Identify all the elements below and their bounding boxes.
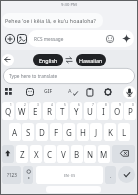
staticText: G <box>66 127 72 138</box>
staticText: U <box>87 106 93 117</box>
staticText: 0 <box>132 103 134 107</box>
staticText: . <box>110 172 112 179</box>
staticText: N <box>87 149 94 160</box>
staticText: E <box>33 106 38 117</box>
staticText: C <box>47 149 53 160</box>
staticText: 9 <box>119 103 121 107</box>
staticText: 8 <box>105 103 107 107</box>
staticText: EN · ES <box>64 173 76 178</box>
staticText: A <box>12 127 18 138</box>
staticText: Y <box>74 106 79 117</box>
staticText: X <box>34 149 39 160</box>
staticText: RCS message <box>34 36 64 42</box>
staticText: S <box>26 127 31 138</box>
staticText: T <box>60 106 65 117</box>
staticText: R <box>47 106 52 117</box>
staticText: J <box>95 127 98 138</box>
staticText: 6 <box>78 103 80 107</box>
staticText: ?123 <box>7 172 17 178</box>
staticText: 7 <box>92 103 94 107</box>
staticText: 4 <box>51 103 53 107</box>
staticText: Pehea 'oe i kēia lā, e ku'u hoaaloha? <box>5 17 96 24</box>
staticText: Q <box>5 106 12 117</box>
staticText: K <box>108 127 113 138</box>
staticText: 1 <box>10 103 12 107</box>
staticText: P <box>128 106 133 117</box>
staticText: GIF <box>44 88 53 95</box>
staticText: O <box>114 106 121 117</box>
staticText: Z <box>20 149 25 160</box>
staticText: L <box>122 127 127 138</box>
staticText: Type here to translate <box>9 73 58 79</box>
staticText: English <box>39 57 58 64</box>
staticText: F <box>54 127 59 138</box>
staticText: V <box>61 149 66 160</box>
staticText: 2 <box>24 103 26 107</box>
staticText: W <box>18 106 26 117</box>
staticText: B <box>74 149 80 160</box>
staticText: A <box>68 87 72 95</box>
staticText: 5 <box>64 103 66 107</box>
staticText: 3 <box>37 103 39 107</box>
staticText: I <box>102 106 105 117</box>
staticText: D <box>39 127 45 138</box>
staticText: Hawaiian <box>79 57 103 64</box>
staticText: M <box>100 149 108 160</box>
staticText: 9:30 PM <box>61 2 77 8</box>
staticText: H <box>80 127 86 138</box>
